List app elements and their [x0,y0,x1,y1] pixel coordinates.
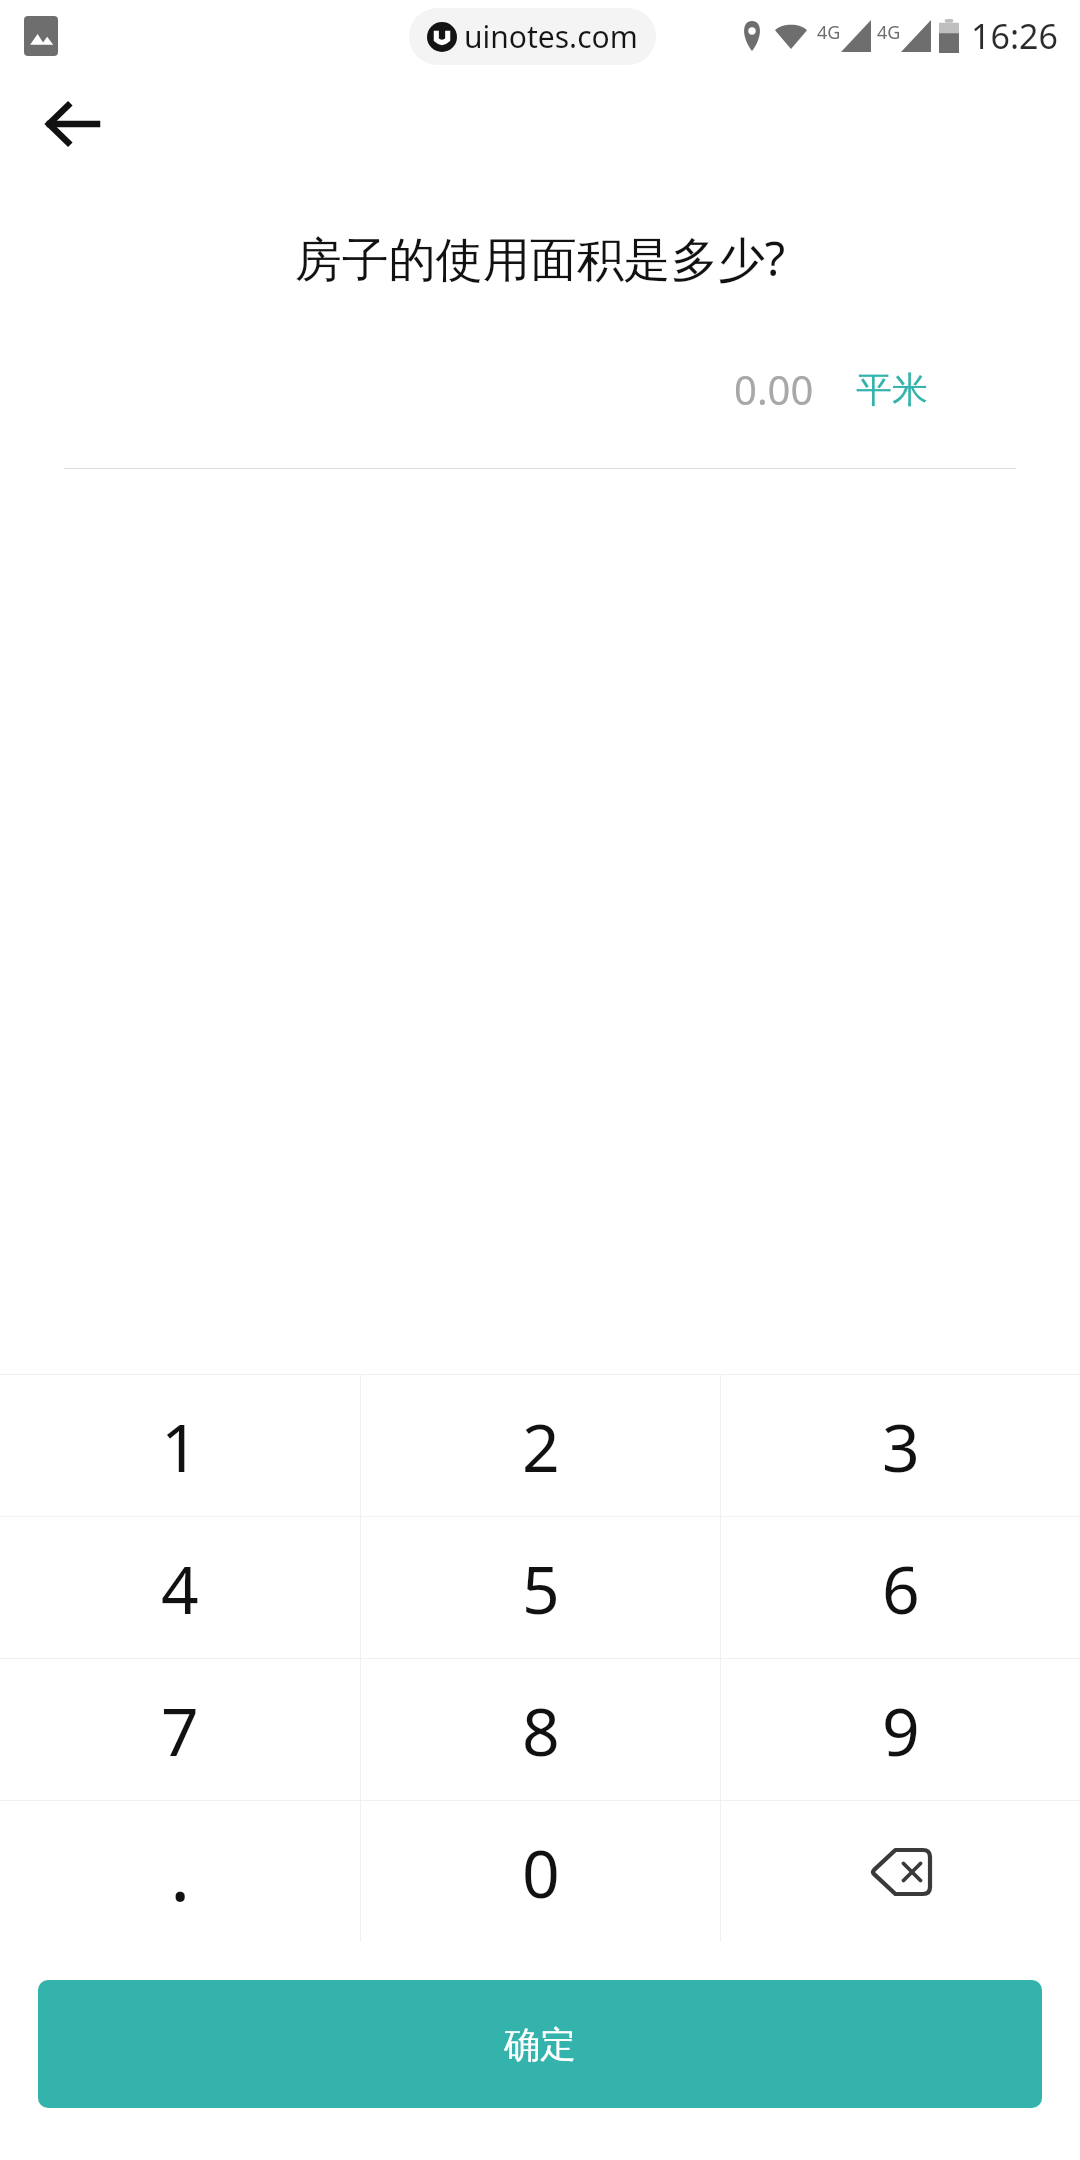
staticText: 2 [522,1401,560,1491]
staticText: 3 [882,1401,920,1491]
staticText: 5 [522,1543,560,1633]
staticText: 7 [161,1685,199,1775]
staticText: 8 [522,1685,560,1775]
staticText: 9 [882,1685,920,1775]
button[interactable]: 9 [721,1659,1080,1800]
button[interactable]: 8 [361,1659,720,1800]
button[interactable]: . [0,1801,360,1942]
staticText: uinotes.com [464,16,638,57]
button[interactable]: 6 [721,1517,1080,1658]
button[interactable]: 7 [0,1659,360,1800]
staticText: 6 [882,1543,920,1633]
button[interactable]: 平米 [856,367,1016,412]
staticText: 平米 [856,367,928,412]
staticText: 1 [161,1401,199,1491]
staticText: 4G [817,20,841,45]
staticText: . [170,1820,191,1924]
staticText: 4 [161,1543,199,1633]
staticText: 0 [522,1827,560,1917]
button[interactable]: Delete [721,1801,1080,1942]
button[interactable]: 5 [361,1517,720,1658]
button[interactable]: 4 [0,1517,360,1658]
button[interactable]: 3 [721,1375,1080,1516]
staticText: 4G [877,20,901,45]
staticText: 房子的使用面积是多少? [70,226,1010,290]
button[interactable]: 确定 [38,1980,1042,2108]
button[interactable]: Back [22,78,122,170]
staticText: 确定 [504,2022,576,2067]
staticText: 16:26 [971,13,1058,59]
button[interactable]: 0 [361,1801,720,1942]
button[interactable]: 1 [0,1375,360,1516]
button[interactable]: 2 [361,1375,720,1516]
staticText: 0.00 [734,362,814,416]
